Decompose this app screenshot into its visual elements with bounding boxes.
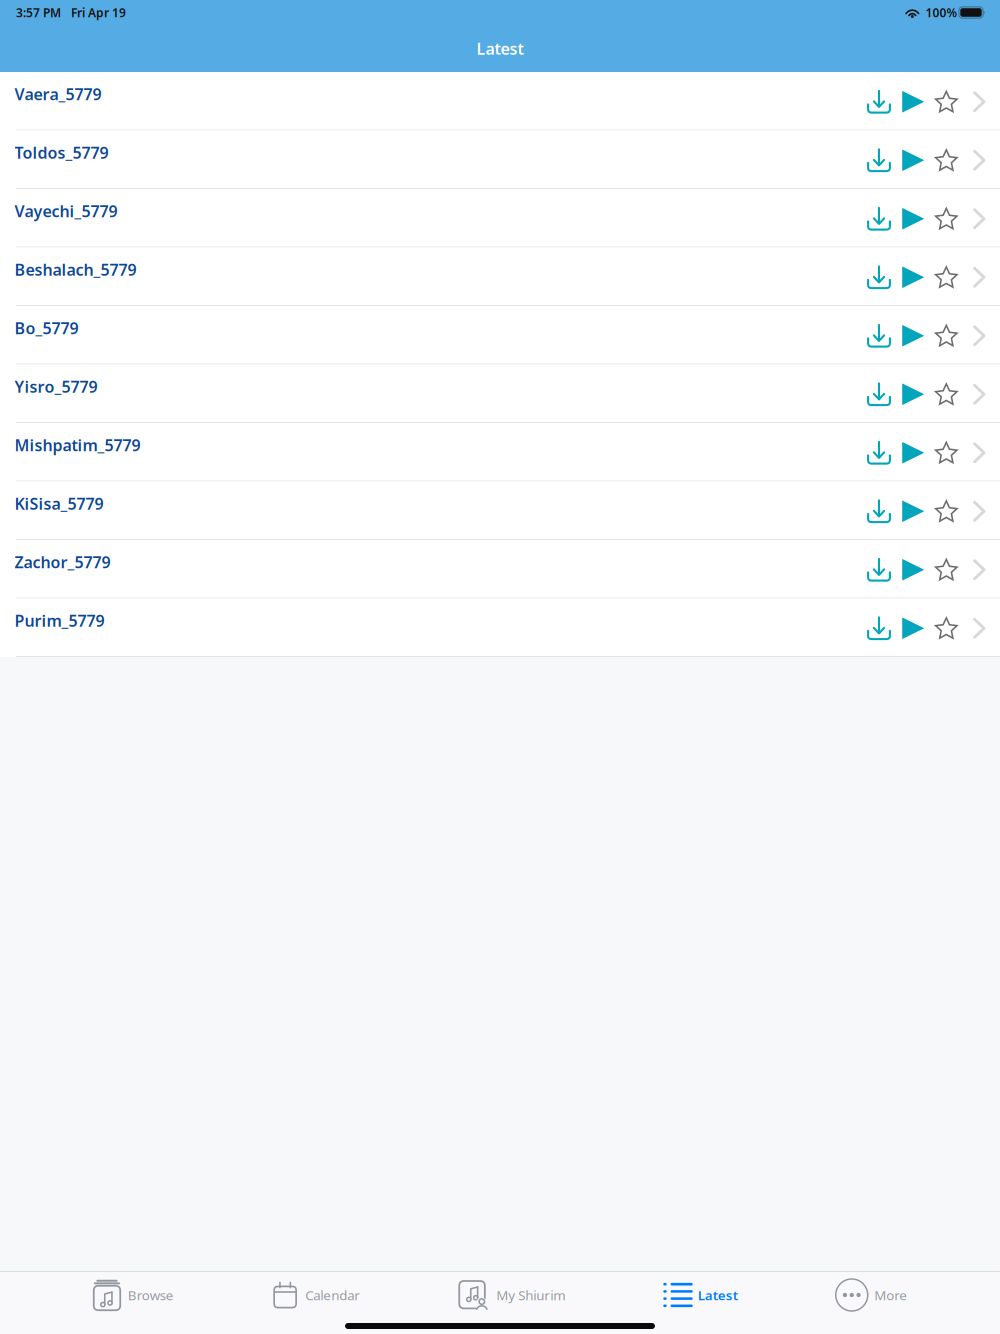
button[interactable]: Open Purim_5779 [973,618,986,639]
button[interactable]: Open Zachor_5779 [973,559,986,580]
button[interactable]: Play Purim_5779 [902,617,925,639]
staticText: Bo_5779 [14,317,78,339]
button[interactable]: Toldos_5779 [0,130,1000,188]
button[interactable]: Favorite Yisro_5779 [935,382,957,406]
staticText: More [874,1286,907,1304]
staticText: Zachor_5779 [14,551,110,573]
button[interactable]: Favorite KiSisa_5779 [935,499,957,523]
staticText: Vaera_5779 [14,83,101,105]
button[interactable]: Favorite Mishpatim_5779 [935,441,957,464]
button[interactable]: Vayechi_5779 [0,189,1000,246]
button[interactable]: Play Beshalach_5779 [902,266,925,288]
button[interactable]: Open Vaera_5779 [973,91,986,112]
button[interactable]: Play Vaera_5779 [902,91,925,113]
staticText: Yisro_5779 [14,376,97,397]
button[interactable]: Mishpatim_5779 [0,423,1000,480]
staticText: Browse [128,1286,174,1304]
staticText: Vayechi_5779 [14,200,117,222]
button[interactable]: Favorite Vaera_5779 [935,90,957,113]
button[interactable]: Yisro_5779 [0,364,1000,422]
button[interactable]: Open Vayechi_5779 [973,208,986,229]
staticText: Latest [476,38,523,59]
button[interactable]: Zachor_5779 [0,540,1000,597]
staticText: Beshalach_5779 [14,259,136,280]
button[interactable]: Play Zachor_5779 [902,559,925,581]
button[interactable]: Vaera_5779 [0,72,1000,129]
staticText: Calendar [305,1286,360,1304]
button[interactable]: Play KiSisa_5779 [902,500,925,522]
staticText: 3:57 PM [16,4,61,20]
button[interactable]: Favorite Zachor_5779 [935,558,957,581]
staticText: My Shiurim [496,1286,565,1304]
button[interactable]: Browse [93,1272,174,1318]
button[interactable]: Bo_5779 [0,306,1000,363]
button[interactable]: Beshalach_5779 [0,247,1000,305]
button[interactable]: Open Yisro_5779 [973,384,986,405]
button[interactable]: Download Vayechi_5779 [867,207,891,231]
button[interactable]: Download Toldos_5779 [867,148,891,172]
button[interactable]: Favorite Vayechi_5779 [935,207,957,230]
button[interactable]: Purim_5779 [0,598,1000,656]
button[interactable]: Download Zachor_5779 [867,558,891,582]
button[interactable]: Latest [663,1272,738,1318]
button[interactable]: Play Mishpatim_5779 [902,442,925,464]
button[interactable]: Calendar [272,1272,360,1318]
button[interactable]: More [836,1272,907,1318]
button[interactable]: Favorite Toldos_5779 [935,148,957,172]
button[interactable]: Favorite Purim_5779 [935,616,957,640]
button[interactable]: Download Yisro_5779 [867,382,891,406]
button[interactable]: Play Yisro_5779 [902,383,925,405]
button[interactable]: Open Bo_5779 [973,325,986,346]
button[interactable]: Open Toldos_5779 [973,150,986,171]
staticText: Mishpatim_5779 [14,434,140,456]
button[interactable]: Download Bo_5779 [867,324,891,348]
button[interactable]: My Shiurim [458,1272,565,1318]
button[interactable]: Download Beshalach_5779 [867,265,891,289]
button[interactable]: Favorite Bo_5779 [935,324,957,347]
button[interactable]: Open Mishpatim_5779 [973,442,986,463]
staticText: 100% [925,4,957,20]
staticText: Purim_5779 [14,610,104,631]
button[interactable]: Download Vaera_5779 [867,90,891,114]
button[interactable]: Play Toldos_5779 [902,149,925,171]
button[interactable]: Download Purim_5779 [867,616,891,640]
button[interactable]: Open Beshalach_5779 [973,267,986,288]
button[interactable]: Download KiSisa_5779 [867,499,891,523]
button[interactable]: Open KiSisa_5779 [973,501,986,522]
staticText: Latest [698,1286,738,1304]
staticText: Fri Apr 19 [71,4,126,20]
button[interactable]: Download Mishpatim_5779 [867,441,891,465]
button[interactable]: Favorite Beshalach_5779 [935,265,957,289]
staticText: Toldos_5779 [14,142,108,163]
staticText: KiSisa_5779 [14,493,103,514]
button[interactable]: KiSisa_5779 [0,481,1000,539]
button[interactable]: Play Vayechi_5779 [902,208,925,230]
button[interactable]: Play Bo_5779 [902,325,925,347]
